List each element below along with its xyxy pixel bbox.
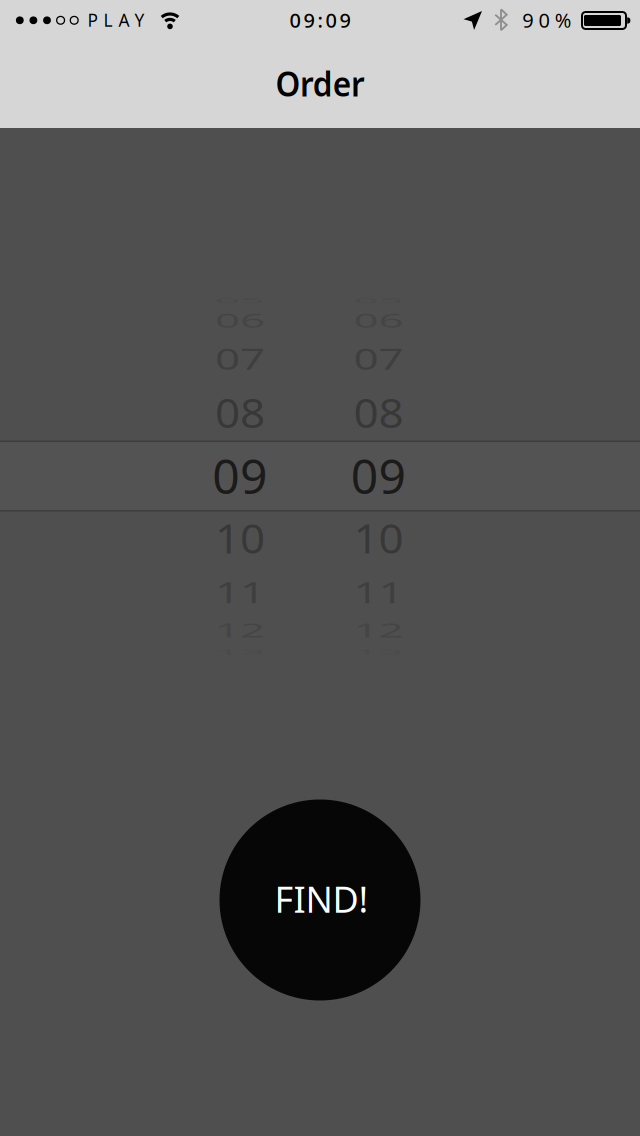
staticText: 11: [215, 563, 265, 621]
staticText: %: [555, 7, 572, 33]
staticText: 10: [353, 509, 403, 567]
staticText: 11: [353, 563, 403, 621]
staticText: Order: [271, 60, 369, 106]
staticText: 07: [353, 329, 403, 387]
staticText: 09: [213, 445, 267, 507]
staticText: 09: [351, 445, 405, 507]
button[interactable]: FIND!: [219, 799, 420, 1000]
staticText: 9: [522, 7, 533, 33]
staticText: :: [317, 7, 322, 33]
staticText: 9: [339, 7, 350, 33]
staticText: 0: [289, 7, 300, 33]
staticText: FIND!: [274, 875, 368, 923]
staticText: 0: [325, 7, 336, 33]
staticText: PLAY: [87, 8, 144, 31]
staticText: 07: [215, 329, 265, 387]
staticText: 0: [538, 7, 549, 33]
staticText: 9: [303, 7, 314, 33]
staticText: 08: [353, 384, 403, 442]
staticText: 10: [215, 509, 265, 567]
staticText: 08: [215, 384, 265, 442]
